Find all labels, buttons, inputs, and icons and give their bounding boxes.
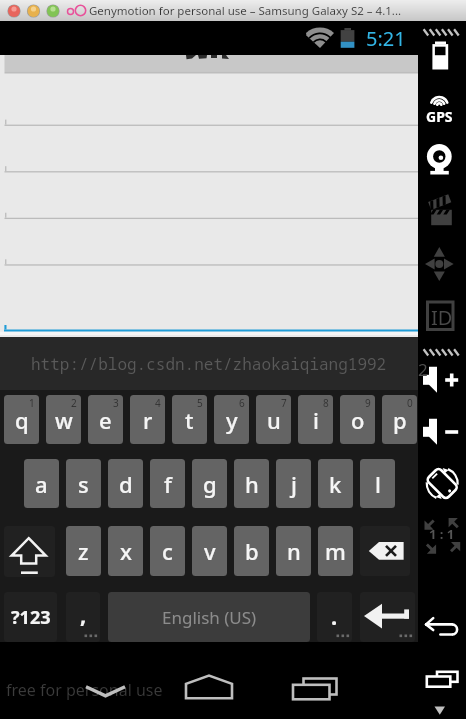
staticText: n — [287, 536, 301, 566]
button[interactable]: t — [172, 395, 207, 444]
staticText: r — [143, 405, 153, 435]
staticText: z — [78, 536, 89, 566]
button[interactable]: English (US) — [108, 592, 310, 642]
button[interactable]: z — [66, 526, 101, 576]
staticText: g — [203, 469, 217, 499]
button[interactable]: , — [66, 592, 100, 642]
button[interactable]: m — [318, 526, 353, 576]
button[interactable]: Delete — [360, 526, 410, 576]
staticText: free for personal use — [6, 679, 163, 701]
staticText: 1 — [29, 396, 35, 410]
staticText: 1 : 1 — [429, 525, 455, 543]
button[interactable]: o — [340, 395, 375, 444]
staticText: o — [351, 405, 365, 435]
staticText: h — [245, 469, 259, 499]
button[interactable]: h — [234, 459, 269, 508]
staticText: GPS — [426, 107, 453, 126]
button[interactable]: l — [360, 459, 395, 508]
staticText: q — [15, 405, 29, 435]
staticText: l — [375, 469, 381, 499]
staticText: 2 — [71, 396, 77, 410]
button[interactable]: d — [108, 459, 143, 508]
button[interactable]: w — [46, 395, 81, 444]
button[interactable]: ?123 — [4, 592, 57, 642]
button[interactable]: f — [150, 459, 185, 508]
button[interactable]: i — [298, 395, 333, 444]
button[interactable]: n — [276, 526, 311, 576]
staticText: 2 — [418, 358, 428, 381]
button[interactable]: v — [192, 526, 227, 576]
staticText: . — [331, 601, 338, 631]
staticText: 4 — [155, 396, 161, 410]
button[interactable]: a — [24, 459, 59, 508]
button[interactable]: Enter — [360, 592, 415, 642]
button[interactable]: e — [88, 395, 123, 444]
staticText: ID — [431, 304, 453, 331]
staticText: p — [393, 405, 407, 435]
staticText: 5 — [197, 396, 203, 410]
staticText: k — [329, 469, 342, 499]
button[interactable]: . — [317, 592, 352, 642]
staticText: x — [120, 536, 132, 566]
staticText: c — [162, 536, 173, 566]
button[interactable]: y — [214, 395, 249, 444]
staticText: m — [325, 536, 346, 566]
staticText: i — [313, 405, 319, 435]
staticText: 0 — [407, 396, 413, 410]
button[interactable]: k — [318, 459, 353, 508]
button[interactable]: j — [276, 459, 311, 508]
staticText: d — [119, 469, 133, 499]
staticText: j — [291, 469, 297, 499]
staticText: u — [267, 405, 281, 435]
staticText: Genymotion for personal use – Samsung Ga… — [89, 3, 402, 19]
button[interactable]: b — [234, 526, 269, 576]
button[interactable]: q — [4, 395, 39, 444]
staticText: English (US) — [162, 606, 257, 629]
button[interactable]: p — [382, 395, 417, 444]
button[interactable]: c — [150, 526, 185, 576]
staticText: w — [55, 405, 73, 435]
staticText: 3 — [113, 396, 119, 410]
staticText: 9 — [365, 396, 371, 410]
staticText: y — [226, 405, 238, 435]
staticText: t — [185, 405, 194, 435]
staticText: 8 — [323, 396, 329, 410]
button[interactable]: g — [192, 459, 227, 508]
button[interactable]: u — [256, 395, 291, 444]
staticText: ?123 — [11, 605, 51, 630]
staticText: http://blog.csdn.net/zhaokaiqiang1992 — [31, 353, 387, 375]
staticText: b — [245, 536, 259, 566]
button[interactable]: s — [66, 459, 101, 508]
staticText: s — [78, 469, 89, 499]
button[interactable]: Shift — [4, 526, 55, 577]
staticText: v — [204, 536, 216, 566]
staticText: , — [80, 599, 87, 629]
staticText: 7 — [281, 396, 287, 410]
staticText: 5:21 — [366, 25, 406, 52]
staticText: f — [164, 469, 172, 499]
button[interactable]: x — [108, 526, 143, 576]
staticText: e — [99, 405, 112, 435]
staticText: 6 — [239, 396, 245, 410]
button[interactable]: r — [130, 395, 165, 444]
staticText: a — [35, 469, 48, 499]
